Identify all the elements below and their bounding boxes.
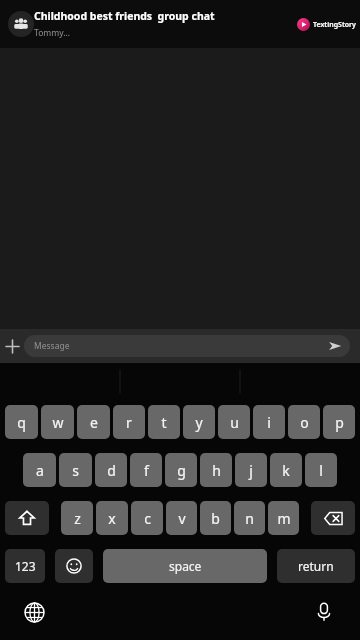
- staticText: p: [335, 413, 344, 432]
- button[interactable]: space: [103, 549, 267, 583]
- button[interactable]: c: [131, 501, 163, 535]
- staticText: t: [161, 413, 167, 432]
- staticText: q: [17, 413, 26, 432]
- button[interactable]: a: [23, 453, 56, 487]
- button[interactable]: j: [235, 453, 267, 487]
- button[interactable]: s: [59, 453, 92, 487]
- staticText: Message: [34, 340, 70, 352]
- other: Send: [328, 339, 342, 353]
- button[interactable]: x: [96, 501, 128, 535]
- staticText: 123: [15, 558, 36, 574]
- button[interactable]: 123: [5, 549, 45, 583]
- button[interactable]: y: [183, 405, 215, 439]
- button[interactable]: TextingStory: [297, 18, 356, 31]
- staticText: TextingStory: [313, 20, 356, 30]
- button[interactable]: Voice input: [310, 598, 338, 626]
- staticText: v: [178, 509, 186, 528]
- button[interactable]: n: [234, 501, 265, 535]
- button[interactable]: m: [268, 501, 299, 535]
- button[interactable]: Emoji: [55, 549, 93, 583]
- staticText: i: [267, 413, 271, 432]
- button[interactable]: e: [77, 405, 110, 439]
- button[interactable]: Message: [24, 335, 350, 357]
- button[interactable]: Change language: [20, 598, 48, 626]
- button[interactable]: u: [218, 405, 250, 439]
- button[interactable]: g: [165, 453, 197, 487]
- button[interactable]: h: [200, 453, 232, 487]
- staticText: f: [144, 461, 149, 480]
- staticText: m: [277, 509, 291, 528]
- staticText: w: [52, 413, 64, 432]
- staticText: u: [230, 413, 239, 432]
- staticText: g: [177, 461, 186, 480]
- staticText: Childhood best friends group chat: [34, 9, 215, 23]
- button[interactable]: k: [270, 453, 302, 487]
- button[interactable]: z: [61, 501, 93, 535]
- button[interactable]: return: [277, 549, 355, 583]
- staticText: r: [126, 413, 132, 432]
- staticText: s: [72, 461, 79, 480]
- staticText: z: [74, 509, 81, 528]
- staticText: n: [245, 509, 254, 528]
- button[interactable]: f: [130, 453, 162, 487]
- button[interactable]: b: [200, 501, 231, 535]
- staticText: d: [107, 461, 116, 480]
- staticText: return: [298, 558, 334, 574]
- staticText: l: [319, 461, 323, 480]
- staticText: k: [282, 461, 290, 480]
- button[interactable]: d: [95, 453, 127, 487]
- staticText: e: [90, 413, 98, 432]
- staticText: Tommy…: [34, 27, 70, 39]
- button[interactable]: l: [305, 453, 337, 487]
- staticText: h: [212, 461, 221, 480]
- button[interactable]: Backspace: [311, 501, 355, 535]
- button[interactable]: i: [253, 405, 285, 439]
- button[interactable]: w: [41, 405, 74, 439]
- staticText: j: [249, 461, 253, 480]
- button[interactable]: q: [5, 405, 38, 439]
- button[interactable]: Add attachment: [0, 329, 24, 363]
- staticText: c: [144, 509, 151, 528]
- button[interactable]: Group avatar: [8, 11, 34, 37]
- button[interactable]: r: [113, 405, 145, 439]
- staticText: o: [300, 413, 309, 432]
- staticText: x: [108, 509, 116, 528]
- staticText: space: [169, 558, 202, 574]
- button[interactable]: Shift: [5, 501, 49, 535]
- button[interactable]: t: [148, 405, 180, 439]
- staticText: b: [211, 509, 220, 528]
- button[interactable]: v: [166, 501, 197, 535]
- staticText: a: [36, 461, 44, 480]
- button[interactable]: o: [288, 405, 320, 439]
- button[interactable]: p: [323, 405, 355, 439]
- staticText: y: [195, 413, 203, 432]
